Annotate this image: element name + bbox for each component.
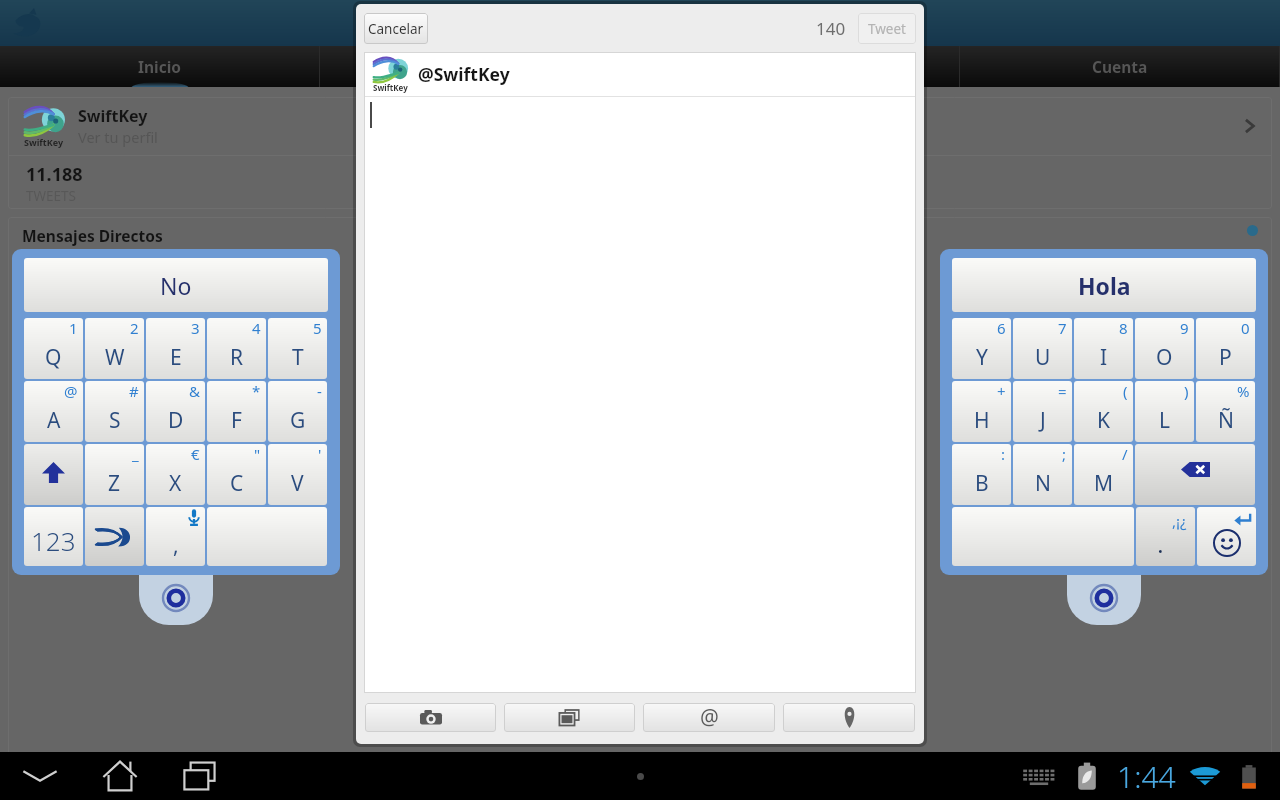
staticText: &: [189, 381, 200, 401]
staticText: M: [1094, 469, 1114, 498]
button[interactable]: S: [85, 381, 144, 442]
button[interactable]: Shift: [24, 444, 83, 505]
button[interactable]: Recents: [174, 752, 226, 800]
staticText: I: [1100, 343, 1108, 372]
button[interactable]: A: [24, 381, 83, 442]
staticText: SwiftKey: [24, 136, 64, 148]
button[interactable]: X: [146, 444, 205, 505]
button[interactable]: ,¡¿: [1136, 507, 1195, 566]
staticText: No: [160, 270, 192, 301]
button[interactable]: SwiftKey menu: [85, 507, 144, 566]
button[interactable]: Wi-Fi: [1186, 758, 1224, 796]
staticText: G: [290, 406, 306, 435]
button[interactable]: Hola: [952, 258, 1256, 312]
button[interactable]: ,: [146, 507, 205, 566]
staticText: 8: [1119, 318, 1128, 338]
button[interactable]: 123: [24, 507, 83, 566]
button[interactable]: O: [1135, 318, 1194, 379]
staticText: E: [170, 343, 182, 372]
button[interactable]: Battery saver: [1067, 757, 1107, 797]
staticText: J: [1040, 406, 1046, 435]
staticText: ": [254, 444, 261, 464]
button[interactable]: W: [85, 318, 144, 379]
button[interactable]: Location: [783, 703, 915, 732]
staticText: /: [1122, 444, 1128, 464]
button[interactable]: U: [1013, 318, 1072, 379]
button[interactable]: T: [268, 318, 327, 379]
staticText: #: [129, 381, 139, 401]
staticText: 9: [1180, 318, 1189, 338]
staticText: 0: [1241, 318, 1250, 338]
button[interactable]: K: [1074, 381, 1133, 442]
staticText: SwiftKey: [373, 82, 408, 93]
button[interactable]: F: [207, 381, 266, 442]
button[interactable]: Gallery: [504, 703, 635, 732]
staticText: 140: [816, 17, 846, 40]
button[interactable]: Move keyboard: [139, 575, 213, 625]
button[interactable]: Home: [94, 752, 146, 800]
button[interactable]: Tweet: [858, 13, 916, 44]
button[interactable]: P: [1196, 318, 1255, 379]
button[interactable]: C: [207, 444, 266, 505]
staticText: Tweet: [868, 20, 906, 38]
staticText: @SwiftKey: [418, 62, 510, 86]
button[interactable]: Inicio: [0, 46, 320, 87]
staticText: Inicio: [138, 56, 182, 77]
button[interactable]: B: [952, 444, 1011, 505]
button[interactable]: No: [24, 258, 328, 312]
button[interactable]: Z: [85, 444, 144, 505]
staticText: (: [1123, 381, 1128, 401]
button[interactable]: Cuenta: [960, 46, 1280, 87]
button[interactable]: Keyboard: [1019, 757, 1059, 797]
staticText: K: [1097, 406, 1110, 435]
staticText: _: [132, 444, 139, 464]
button[interactable]: M: [1074, 444, 1133, 505]
staticText: 11.188: [26, 162, 83, 187]
button[interactable]: Space: [952, 507, 1134, 566]
button[interactable]: Cancelar: [364, 13, 428, 44]
staticText: H: [974, 406, 990, 435]
staticText: D: [168, 406, 184, 435]
button[interactable]: SwiftKey: [24, 97, 1272, 155]
button[interactable]: D: [146, 381, 205, 442]
button[interactable]: Y: [952, 318, 1011, 379]
staticText: @: [64, 381, 78, 401]
staticText: ): [1184, 381, 1189, 401]
staticText: C: [230, 469, 244, 498]
button[interactable]: Tab: [640, 46, 960, 87]
staticText: Ñ: [1218, 406, 1234, 435]
button[interactable]: Backspace: [1135, 444, 1255, 505]
button[interactable]: V: [268, 444, 327, 505]
button[interactable]: Q: [24, 318, 83, 379]
button[interactable]: Ñ: [1196, 381, 1255, 442]
staticText: N: [1035, 469, 1051, 498]
button[interactable]: N: [1013, 444, 1072, 505]
button[interactable]: Tab: [320, 46, 640, 87]
button[interactable]: L: [1135, 381, 1194, 442]
button[interactable]: Emoji: [1197, 507, 1256, 566]
button[interactable]: H: [952, 381, 1011, 442]
button[interactable]: Move keyboard: [1067, 575, 1141, 625]
staticText: F: [231, 406, 242, 435]
staticText: 4: [252, 318, 261, 338]
button[interactable]: G: [268, 381, 327, 442]
button[interactable]: J: [1013, 381, 1072, 442]
staticText: Z: [108, 469, 121, 498]
staticText: B: [975, 469, 989, 498]
staticText: T: [292, 343, 304, 372]
button[interactable]: Back: [14, 752, 66, 800]
button[interactable]: I: [1074, 318, 1133, 379]
staticText: Q: [45, 343, 62, 372]
staticText: :: [1001, 444, 1006, 464]
button[interactable]: Battery: [1232, 760, 1266, 794]
button[interactable]: Mention: [643, 703, 775, 732]
staticText: 3: [191, 318, 200, 338]
staticText: Mensajes Directos: [22, 225, 163, 246]
staticText: 7: [1058, 318, 1067, 338]
staticText: 2: [130, 318, 139, 338]
button[interactable]: R: [207, 318, 266, 379]
button[interactable]: Camera: [365, 703, 496, 732]
staticText: Hola: [1078, 270, 1131, 301]
button[interactable]: E: [146, 318, 205, 379]
button[interactable]: Space: [207, 507, 327, 566]
